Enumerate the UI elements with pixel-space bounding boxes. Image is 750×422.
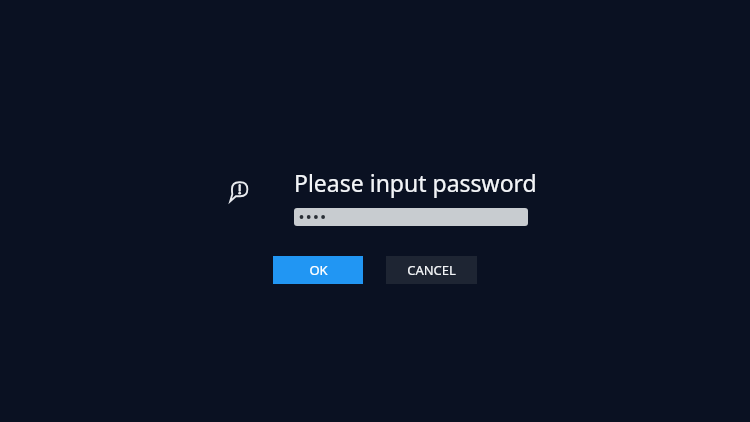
button[interactable]: CANCEL [386, 256, 477, 284]
button[interactable]: OK [273, 256, 363, 284]
staticText: CANCEL [407, 261, 456, 279]
other: Alert [228, 180, 250, 202]
button[interactable] [294, 208, 528, 226]
staticText: Please input password [294, 167, 537, 198]
staticText: OK [309, 261, 328, 279]
